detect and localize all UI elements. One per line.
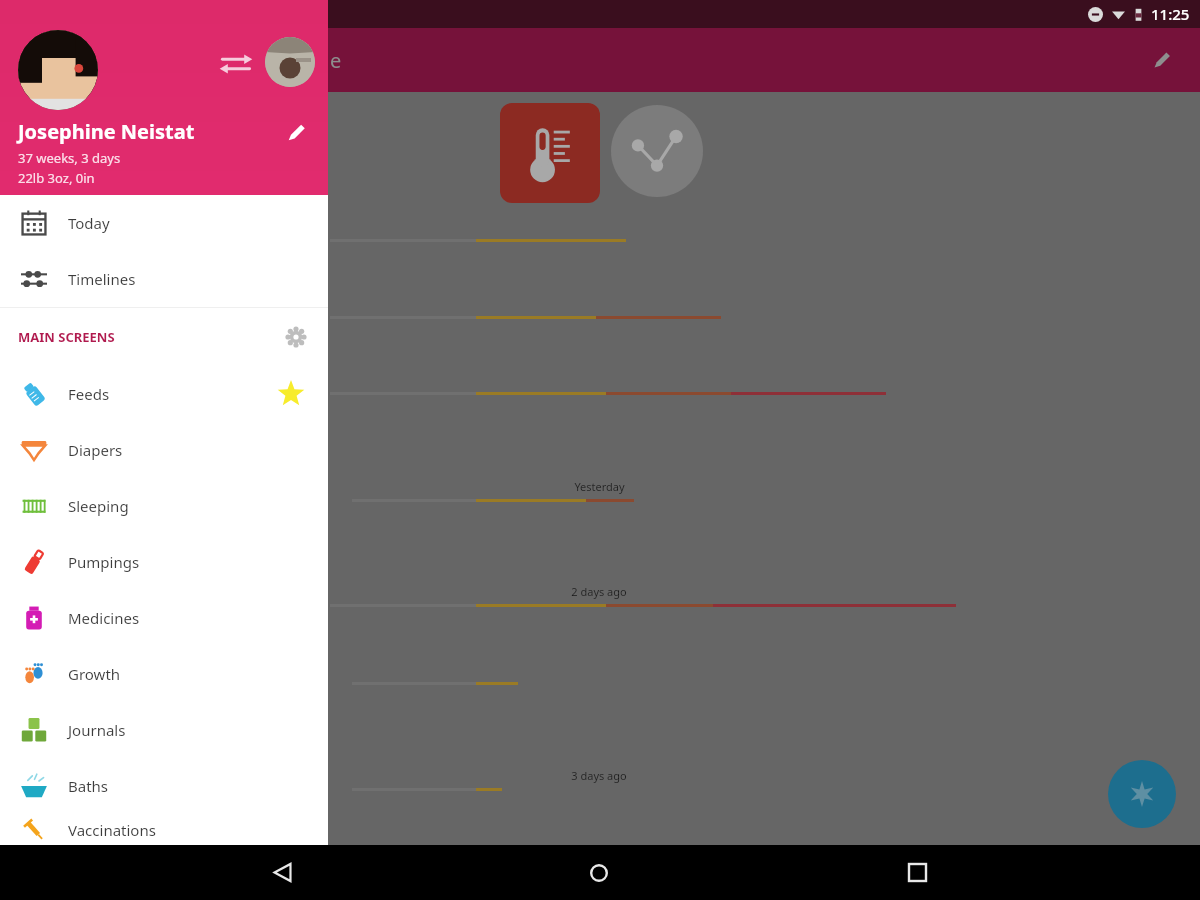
staticText: Josephine Neistat xyxy=(18,118,195,145)
button[interactable]: Charts xyxy=(611,105,703,197)
button[interactable]: Journals xyxy=(0,702,328,758)
staticText: Timelines xyxy=(68,269,136,289)
staticText: Baths xyxy=(68,776,109,796)
staticText: Pumpings xyxy=(68,552,140,572)
button[interactable]: MAIN SCREENS xyxy=(0,308,328,366)
button[interactable]: Edit profile xyxy=(272,108,320,156)
button[interactable]: Medicines xyxy=(0,590,328,646)
button[interactable]: Growth xyxy=(0,646,328,702)
button[interactable]: Pumpings xyxy=(0,534,328,590)
button[interactable]: Profile photo xyxy=(18,30,98,110)
staticText: 37 weeks, 3 days xyxy=(18,149,121,167)
button[interactable]: Today xyxy=(0,195,328,251)
button[interactable]: Vaccinations xyxy=(0,814,328,845)
staticText: e xyxy=(330,47,342,74)
staticText: Sleeping xyxy=(68,496,129,516)
staticText: 3 days ago xyxy=(571,768,627,783)
staticText: Growth xyxy=(68,664,121,684)
staticText: Feeds xyxy=(68,384,110,404)
staticText: Journals xyxy=(68,720,126,740)
button[interactable]: Feeds xyxy=(0,366,328,422)
staticText: MAIN SCREENS xyxy=(18,328,115,346)
button[interactable]: Configure screens xyxy=(278,319,314,355)
button[interactable]: Switch child xyxy=(214,42,258,86)
button[interactable]: Home xyxy=(564,845,634,900)
button[interactable]: Baths xyxy=(0,758,328,814)
staticText: 22lb 3oz, 0in xyxy=(18,169,95,187)
staticText: Yesterday xyxy=(574,479,625,494)
staticText: 11:25 xyxy=(1151,4,1190,24)
staticText: Today xyxy=(68,213,110,233)
staticText: Medicines xyxy=(68,608,140,628)
button[interactable]: Edit xyxy=(1138,36,1186,84)
button[interactable]: Other child xyxy=(265,37,315,87)
button[interactable]: Diapers xyxy=(0,422,328,478)
button[interactable]: Temperature xyxy=(500,103,600,203)
button[interactable]: Recent apps xyxy=(882,845,952,900)
button[interactable]: Add entry xyxy=(1108,760,1176,828)
button[interactable]: Sleeping xyxy=(0,478,328,534)
staticText: Diapers xyxy=(68,440,123,460)
button[interactable]: Back xyxy=(247,845,317,900)
staticText: Vaccinations xyxy=(68,820,156,840)
staticText: 2 days ago xyxy=(571,584,627,599)
button[interactable]: Timelines xyxy=(0,251,328,307)
